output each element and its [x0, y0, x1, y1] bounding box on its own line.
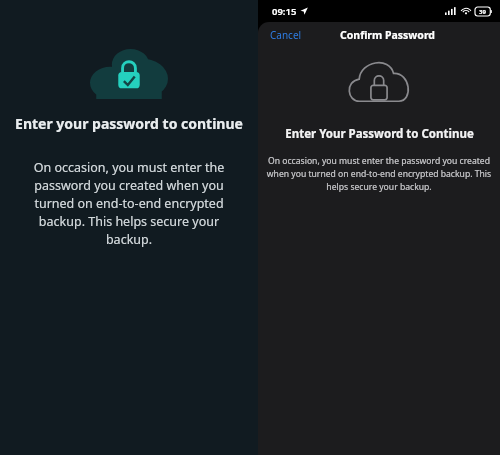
- staticText: Enter your password to continue: [14, 114, 244, 133]
- staticText: Cancel: [270, 28, 302, 42]
- staticText: Enter Your Password to Continue: [285, 126, 474, 142]
- staticText: Confirm Password: [340, 28, 436, 42]
- staticText: On occasion, you must enter the password…: [23, 159, 235, 248]
- staticText: 39: [479, 8, 486, 16]
- button[interactable]: Cancel: [266, 25, 306, 45]
- staticText: On occasion, you must enter the password…: [258, 155, 500, 193]
- staticText: 09:15: [272, 5, 297, 18]
